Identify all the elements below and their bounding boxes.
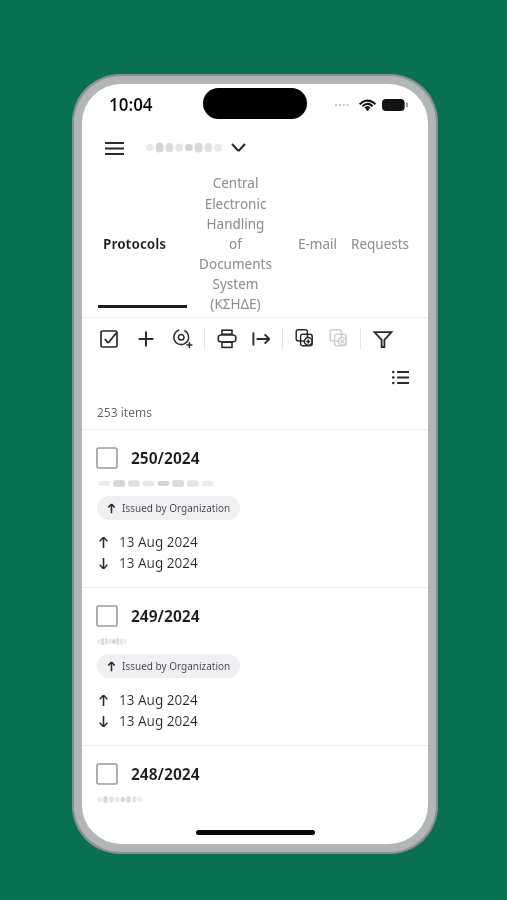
staticText: Issued by Organization	[122, 501, 231, 515]
staticText: Issued by Organization	[122, 659, 231, 673]
button[interactable]: Duplicate	[289, 321, 320, 356]
button[interactable]: Forward	[245, 321, 276, 356]
button[interactable]: Select all	[93, 321, 124, 356]
button[interactable]: Add	[130, 321, 161, 356]
staticText: 13 Aug 2024	[119, 533, 198, 551]
staticText: 13 Aug 2024	[119, 712, 198, 730]
button[interactable]: Assign recipient	[167, 321, 198, 356]
staticText: 248/2024	[131, 763, 200, 784]
staticText: 10:04	[109, 93, 153, 116]
staticText: 13 Aug 2024	[119, 691, 198, 709]
staticText: Protocols	[103, 235, 167, 253]
staticText: 13 Aug 2024	[119, 554, 198, 572]
button[interactable]: Change view	[384, 361, 416, 393]
button[interactable]: Select 250/2024	[97, 448, 117, 468]
button[interactable]: Requests	[332, 170, 428, 317]
button[interactable]: Select 248/2024	[82, 746, 428, 804]
staticText: 253 items	[97, 404, 152, 420]
button[interactable]: E-mail	[278, 170, 358, 317]
button[interactable]: Central Electronic Handling of Documents…	[82, 170, 276, 317]
button[interactable]: Issued by Organization	[97, 654, 240, 678]
staticText: E-mail	[298, 235, 338, 253]
button[interactable]: Select 249/2024	[97, 606, 117, 626]
button[interactable]: Select organization	[145, 133, 245, 162]
button[interactable]: Issued by Organization	[97, 496, 240, 520]
button[interactable]: Remove duplicate	[323, 321, 354, 356]
button[interactable]: Print	[211, 321, 242, 356]
staticText: Requests	[351, 235, 410, 253]
button[interactable]: Protocols	[82, 170, 188, 317]
staticText: Central Electronic Handling of Documents…	[199, 174, 272, 313]
button[interactable]: Menu	[94, 128, 134, 168]
button[interactable]: Filter	[367, 321, 398, 356]
staticText: 250/2024	[131, 447, 200, 468]
button[interactable]: Select 249/2024	[82, 588, 428, 745]
button[interactable]: Select 250/2024	[82, 430, 428, 587]
button[interactable]: Select 248/2024	[97, 764, 117, 784]
staticText: 249/2024	[131, 605, 200, 626]
